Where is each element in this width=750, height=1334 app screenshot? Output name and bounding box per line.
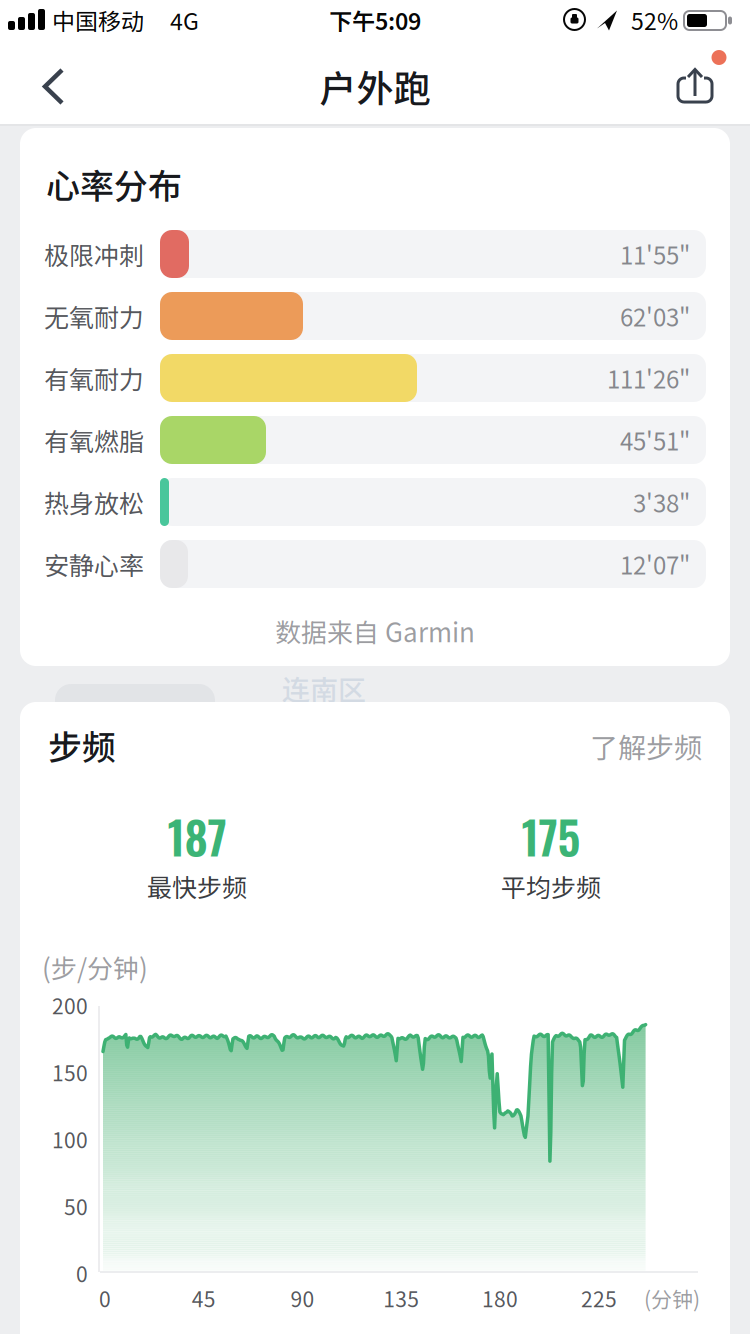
staticText: 187 [167,802,226,870]
staticText: 下午5:09 [329,3,421,37]
staticText: 无氧耐力 [44,298,144,334]
staticText: 200 [52,990,88,1020]
staticText: 45 [192,1283,216,1313]
staticText: 62'03" [620,299,690,333]
staticText: 0 [99,1283,111,1313]
button[interactable]: 了解步频 [502,726,702,766]
staticText: 111'26" [607,361,690,395]
staticText: 12'07" [620,547,690,581]
staticText: 安静心率 [44,546,144,582]
staticText: 175 [521,802,580,870]
staticText: 步频 [48,720,116,770]
staticText: 11'55" [620,237,690,271]
staticText: 有氧耐力 [44,360,144,396]
staticText: 4G [170,3,199,37]
staticText: 3'38" [633,485,690,519]
staticText: (步/分钟) [42,948,148,986]
staticText: 平均步频 [501,868,601,904]
staticText: 有氧燃脂 [44,422,144,458]
staticText: (分钟) [644,1283,700,1313]
staticText: 户外跑 [319,59,430,113]
staticText: 数据来自 Garmin [275,612,475,650]
staticText: 极限冲刺 [44,236,144,272]
staticText: 90 [290,1283,314,1313]
staticText: 50 [64,1191,88,1221]
staticText: 45'51" [620,423,690,457]
staticText: 最快步频 [147,868,247,904]
button[interactable] [660,50,734,110]
staticText: 了解步频 [590,726,702,766]
staticText: 225 [581,1283,617,1313]
staticText: 热身放松 [44,484,144,520]
staticText: 中国移动 [52,3,144,37]
staticText: 心率分布 [46,159,182,209]
staticText: 150 [52,1057,88,1087]
staticText: 135 [383,1283,419,1313]
staticText: 100 [52,1124,88,1154]
button[interactable] [30,56,80,116]
staticText: 0 [76,1258,88,1288]
staticText: 180 [482,1283,518,1313]
staticText: 连南区 [282,668,366,708]
staticText: 52% [631,3,678,37]
